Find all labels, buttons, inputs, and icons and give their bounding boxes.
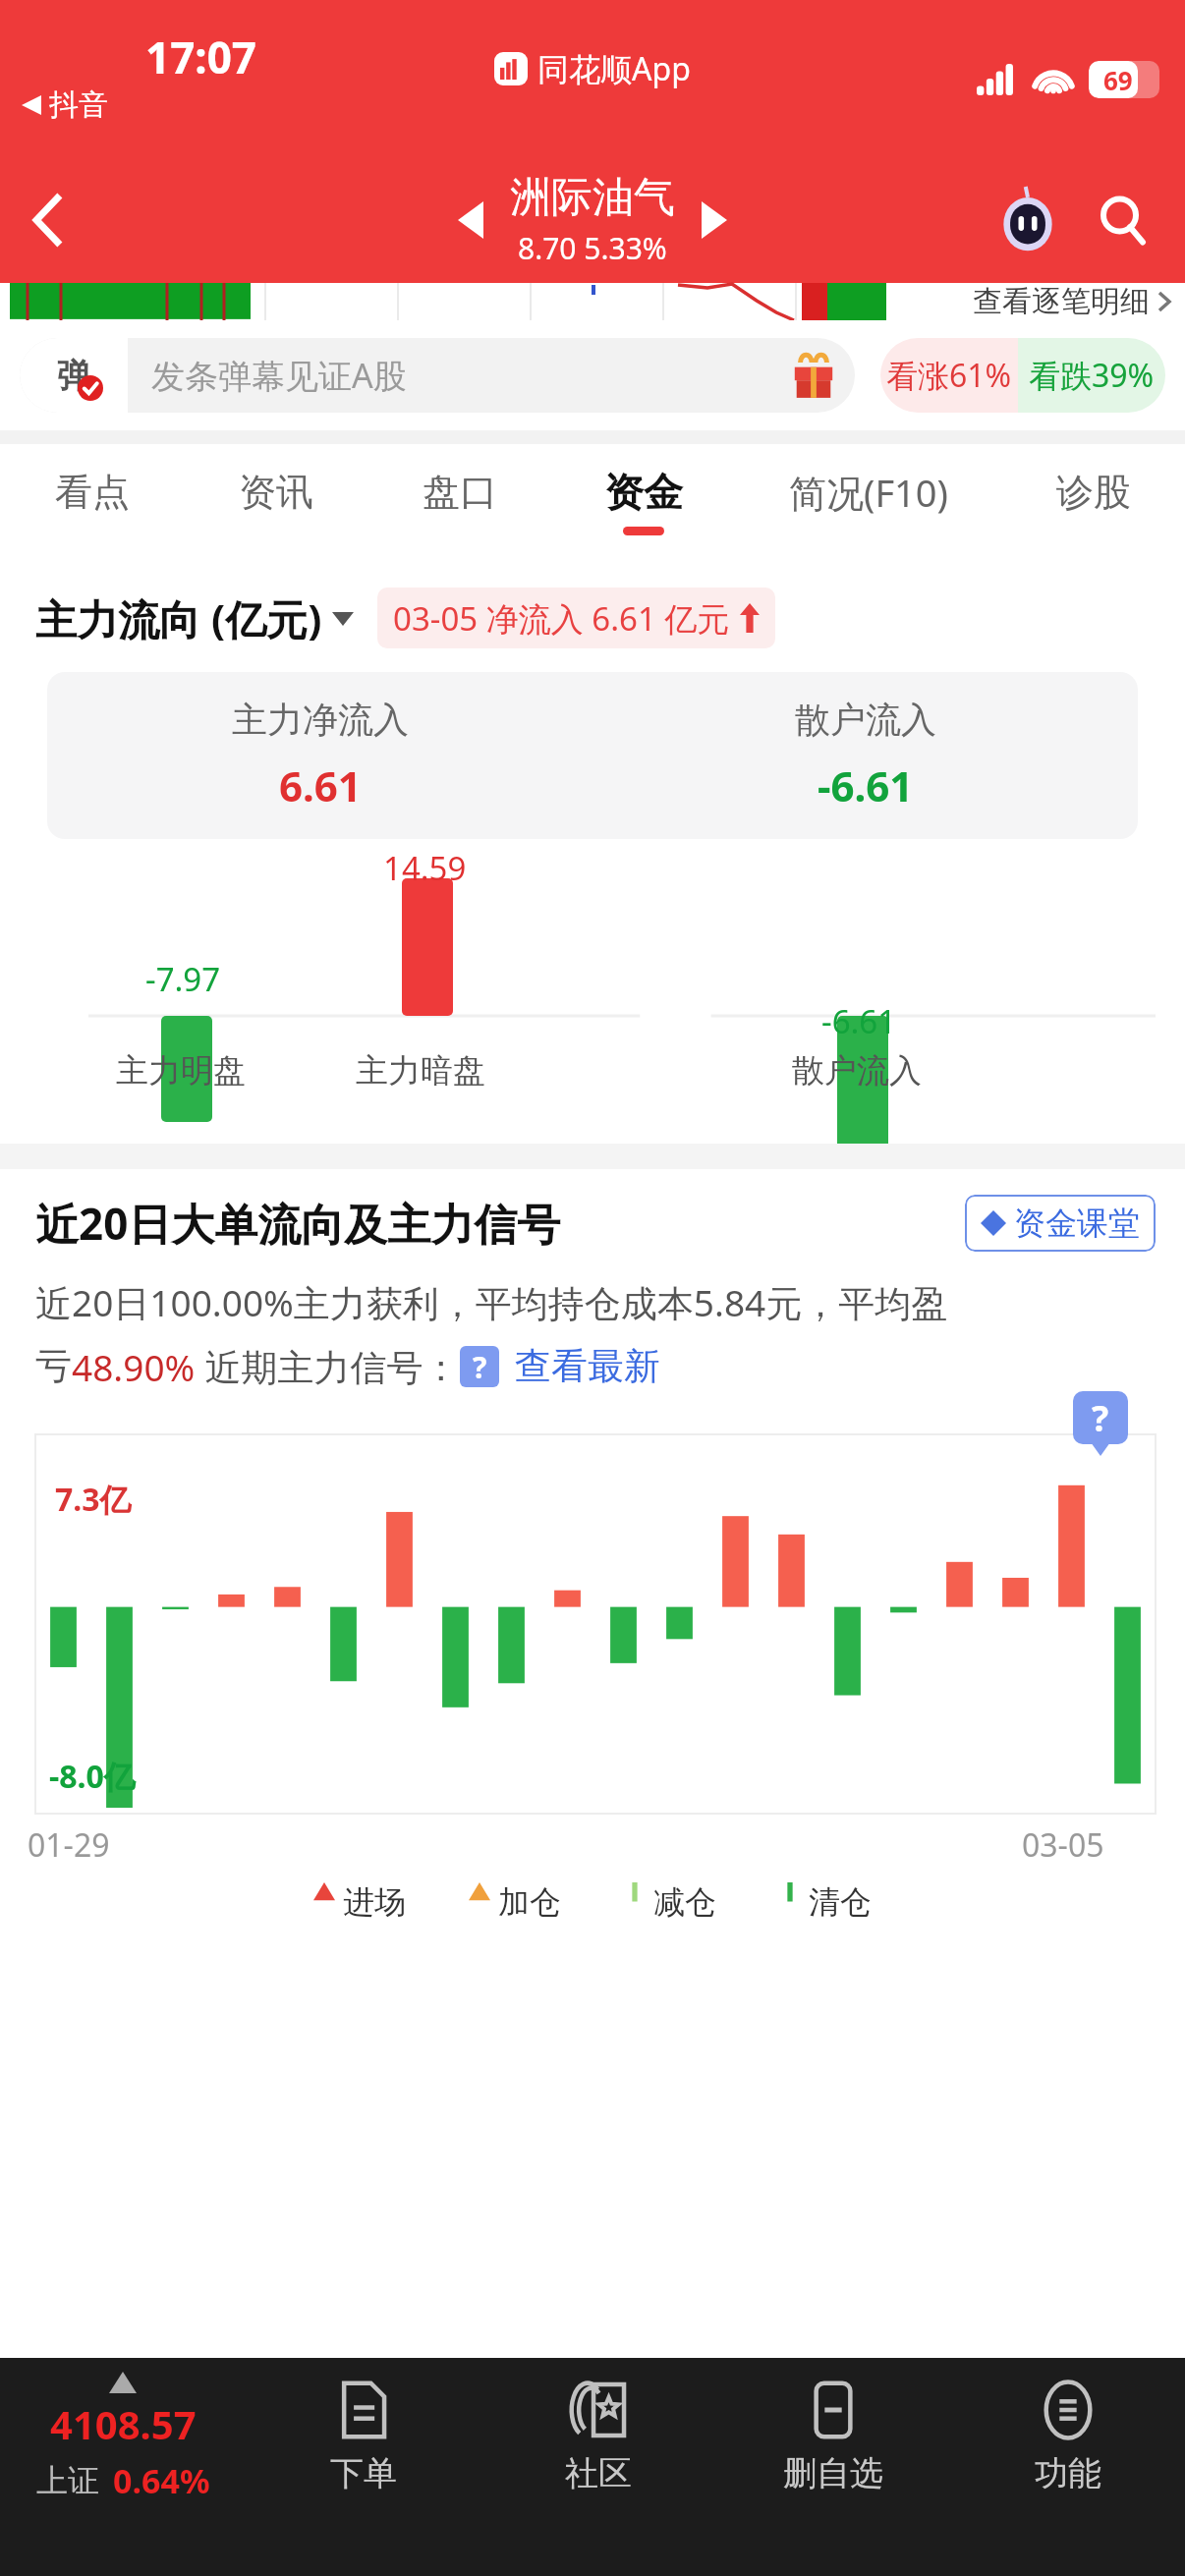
button[interactable]: 主力流向 (亿元) xyxy=(35,590,354,646)
staticText: 主力净流入 xyxy=(232,698,409,742)
button[interactable]: 功能 xyxy=(950,2358,1185,2576)
button[interactable]: 资讯 xyxy=(184,444,367,558)
staticText: 散户流入 xyxy=(795,698,936,742)
button[interactable]: 散户流入 xyxy=(592,698,1138,813)
button[interactable]: 弹 xyxy=(20,338,855,413)
staticText: 4108.57 xyxy=(50,2397,197,2450)
staticText: 48.90% xyxy=(72,1342,196,1391)
staticText: 进场 xyxy=(343,1882,406,1922)
staticText: 69 xyxy=(1103,63,1133,97)
staticText: 散户流入 xyxy=(792,1050,922,1092)
staticText: 同花顺App xyxy=(537,47,691,90)
button[interactable]: 洲际油气 xyxy=(510,172,675,268)
staticText: 洲际油气 xyxy=(510,172,675,224)
staticText: 近20日大单流向及主力信号 xyxy=(35,1194,561,1253)
button[interactable]: Signal info xyxy=(1073,1391,1128,1444)
button[interactable]: Next stock xyxy=(675,171,754,269)
staticText: 03-05 净流入 6.61 亿元 xyxy=(393,596,730,641)
staticText: 亏 xyxy=(35,1343,72,1389)
staticText: -8.0亿 xyxy=(49,1755,136,1798)
staticText: 诊股 xyxy=(1056,469,1131,516)
staticText: 下单 xyxy=(330,2452,397,2494)
button[interactable]: 4108.57 xyxy=(0,2358,246,2576)
button[interactable]: 资金课堂 xyxy=(965,1195,1156,1252)
staticText: ? xyxy=(473,1347,487,1387)
staticText: 盘口 xyxy=(423,469,497,516)
staticText: 主力流向 (亿元) xyxy=(35,590,322,646)
button[interactable]: 简况(F10) xyxy=(735,444,1001,558)
staticText: 查看逐笔明细 xyxy=(973,283,1150,320)
staticText: 简况(F10) xyxy=(789,467,948,518)
staticText: 减仓 xyxy=(653,1882,716,1922)
button[interactable]: 看涨61% xyxy=(880,338,1018,413)
button[interactable]: 主力净流入 xyxy=(47,698,592,813)
button[interactable]: 03-05 净流入 6.61 亿元 xyxy=(377,588,775,648)
staticText: 主力明盘 xyxy=(116,1050,246,1092)
button[interactable]: Search xyxy=(1075,173,1169,267)
staticText: 抖音 xyxy=(49,86,108,124)
button[interactable]: 资金 xyxy=(551,444,735,558)
button[interactable]: 查看逐笔明细 xyxy=(973,283,1171,320)
staticText: 加仓 xyxy=(498,1882,561,1922)
staticText: 01-29 xyxy=(28,1823,110,1867)
staticText: 近期主力信号： xyxy=(196,1341,460,1391)
staticText: 03-05 xyxy=(1022,1823,1104,1867)
staticText: 近20日100.00%主力获利，平均持仓成本5.84元，平均盈 xyxy=(35,1277,948,1327)
staticText: 17:07 xyxy=(145,28,257,86)
staticText: 7.3亿 xyxy=(55,1478,132,1521)
button[interactable]: 删自选 xyxy=(715,2358,950,2576)
staticText: 资金 xyxy=(604,468,683,517)
staticText: 14.59 xyxy=(383,846,467,890)
button[interactable]: 看跌39% xyxy=(1018,338,1165,413)
staticText: 社区 xyxy=(565,2452,632,2494)
staticText: 清仓 xyxy=(809,1882,872,1922)
button[interactable]: 下单 xyxy=(246,2358,480,2576)
staticText: 上证 xyxy=(36,2461,99,2500)
button[interactable]: 盘口 xyxy=(367,444,551,558)
button[interactable]: 看点 xyxy=(0,444,184,558)
staticText: 看跌39% xyxy=(1029,354,1155,397)
staticText: 6.61 xyxy=(279,757,362,813)
button[interactable]: AI assistant xyxy=(981,173,1075,267)
button[interactable]: ? xyxy=(460,1346,499,1387)
staticText: 看涨61% xyxy=(886,354,1012,397)
button[interactable]: Previous stock xyxy=(431,171,510,269)
button[interactable]: 社区 xyxy=(480,2358,715,2576)
button[interactable]: 诊股 xyxy=(1001,444,1185,558)
staticText: 删自选 xyxy=(783,2452,883,2494)
staticText: -6.61 xyxy=(818,757,914,813)
staticText: 看点 xyxy=(55,469,130,516)
button[interactable]: Back xyxy=(0,171,98,269)
staticText: 8.70 5.33% xyxy=(518,228,667,268)
staticText: 发条弹幕见证A股 xyxy=(151,353,790,398)
staticText: 功能 xyxy=(1035,2452,1101,2494)
staticText: 主力暗盘 xyxy=(356,1050,485,1092)
staticText: 资讯 xyxy=(239,469,313,516)
staticText: 资金课堂 xyxy=(1014,1204,1140,1243)
button[interactable]: 查看最新 xyxy=(515,1343,660,1389)
staticText: -6.61 xyxy=(821,999,897,1043)
staticText: 0.64% xyxy=(113,2458,210,2503)
staticText: -7.97 xyxy=(145,957,221,1001)
staticText: 弹 xyxy=(57,355,90,397)
staticText: ? xyxy=(1092,1394,1109,1442)
